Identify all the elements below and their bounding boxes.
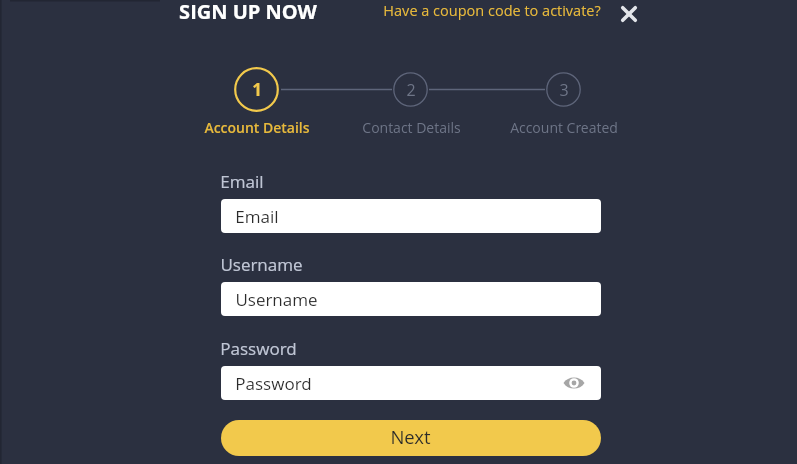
button[interactable]: Username [221, 282, 601, 316]
button[interactable]: Account Details [172, 116, 342, 138]
staticText: Password [220, 337, 297, 360]
staticText: 1 [252, 78, 262, 101]
button[interactable]: 1 [234, 67, 279, 112]
staticText: Password [235, 372, 312, 395]
staticText: Email [235, 205, 279, 228]
staticText: Username [220, 253, 303, 276]
staticText: SIGN UP NOW [179, 0, 317, 24]
button[interactable]: Password [221, 366, 601, 400]
button[interactable]: Contact Details [326, 116, 496, 138]
button[interactable]: SIGN UP NOW [173, 0, 323, 24]
button[interactable]: Next [221, 420, 601, 456]
staticText: Contact Details [362, 118, 461, 137]
button[interactable]: 2 [393, 72, 428, 107]
button[interactable]: 3 [546, 72, 581, 107]
staticText: Have a coupon code to activate? [383, 1, 601, 21]
button[interactable]: Email [221, 199, 601, 233]
staticText: 2 [406, 79, 416, 101]
button[interactable]: Close [615, 0, 643, 28]
staticText: Next [390, 424, 431, 449]
staticText: Account Created [510, 118, 618, 137]
staticText: Email [220, 170, 264, 193]
button[interactable]: Account Created [479, 116, 649, 138]
staticText: Username [235, 288, 318, 311]
staticText: 3 [559, 79, 569, 101]
button[interactable]: Show password [562, 371, 586, 395]
button[interactable]: Have a coupon code to activate? [377, 0, 607, 23]
staticText: Account Details [204, 118, 310, 137]
